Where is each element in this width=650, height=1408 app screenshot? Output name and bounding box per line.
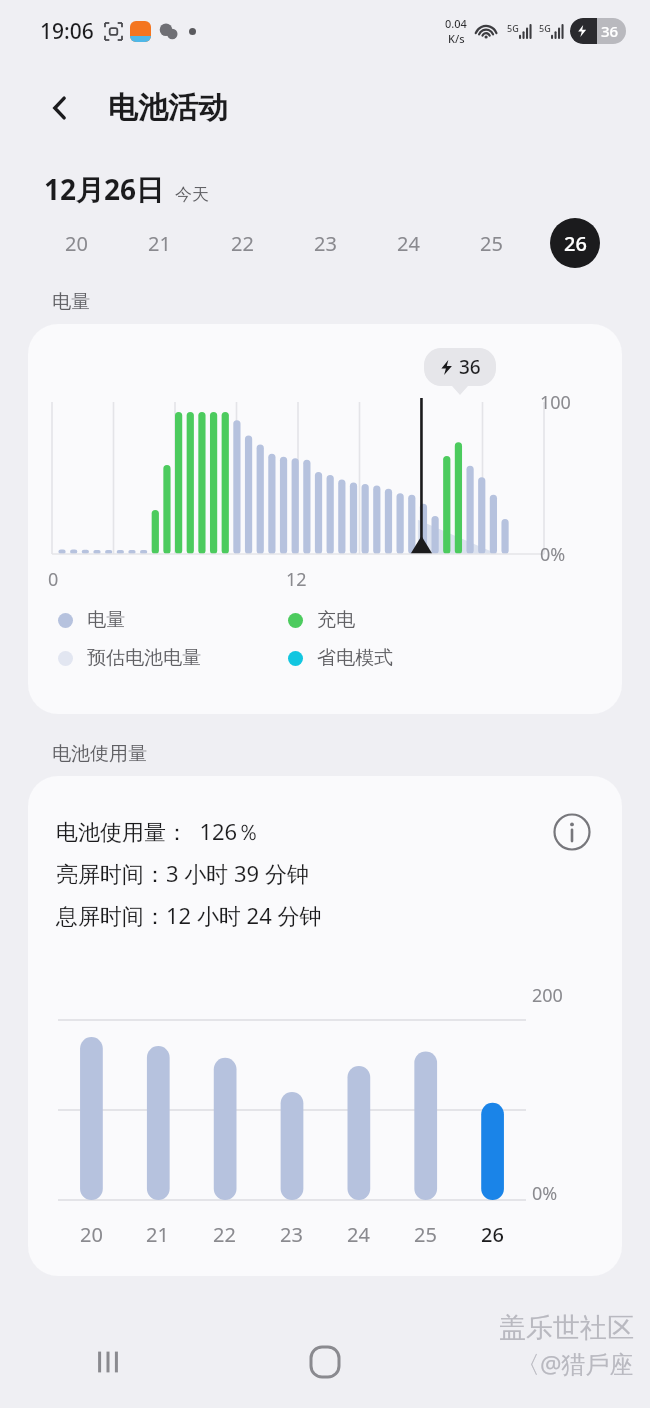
button[interactable]: 最近任务 [0, 1316, 216, 1408]
staticText: 23 [314, 230, 337, 257]
staticText: 电池使用量 [52, 742, 147, 766]
staticText: 电量 [52, 290, 90, 314]
staticText: 22 [213, 1221, 236, 1248]
staticText: 26 [564, 230, 587, 257]
button[interactable]: 充电 [288, 608, 355, 632]
staticText: 息屏时间：12 小时 24 分钟 [56, 900, 322, 930]
button[interactable]: 23 [284, 216, 367, 270]
staticText: 今天 [175, 184, 209, 205]
staticText: 0 [48, 567, 59, 592]
button[interactable]: 电池使用量： 126％ [28, 776, 622, 1276]
staticText: 电池使用量： 126％ [56, 816, 260, 846]
button[interactable]: 25 [450, 216, 533, 270]
staticText: 充电 [317, 608, 355, 632]
staticText: 5G [507, 22, 519, 34]
button[interactable]: 省电模式 [288, 646, 393, 670]
staticText: 36 [601, 21, 619, 41]
staticText: 电量 [87, 608, 125, 632]
staticText: 0.04 [445, 16, 467, 31]
staticText: 23 [280, 1221, 303, 1248]
staticText: 省电模式 [317, 646, 393, 670]
staticText: 21 [146, 1221, 169, 1248]
staticText: 电池活动 [108, 89, 228, 127]
staticText: K/s [448, 31, 465, 46]
staticText: 20 [80, 1221, 103, 1248]
button[interactable]: 详细信息 [544, 804, 600, 860]
button[interactable]: 21 [118, 216, 201, 270]
staticText: 24 [397, 230, 420, 257]
staticText: 0% [540, 542, 566, 567]
staticText: 36 [459, 354, 481, 380]
staticText: 22 [231, 230, 254, 257]
button[interactable]: 预估电池电量 [58, 646, 288, 670]
staticText: 25 [480, 230, 503, 257]
button[interactable]: 主屏幕 [216, 1316, 433, 1408]
staticText: 19:06 [40, 17, 94, 46]
staticText: 24 [347, 1221, 370, 1248]
staticText: 0% [532, 1181, 558, 1206]
staticText: 26 [481, 1221, 504, 1248]
staticText: 20 [65, 230, 88, 257]
staticText: 12 [286, 567, 307, 592]
staticText: 预估电池电量 [87, 646, 201, 670]
staticText: 盖乐世社区 [499, 1311, 634, 1345]
button[interactable]: 22 [201, 216, 284, 270]
button[interactable]: 返回 [36, 84, 84, 132]
staticText: 200 [532, 983, 563, 1008]
button[interactable]: 26 [533, 216, 616, 270]
button[interactable]: 电量 [58, 608, 288, 632]
staticText: 12月26日 [44, 170, 165, 208]
staticText: 〈@猎戶座 [516, 1347, 634, 1380]
button[interactable]: 20 [34, 216, 118, 270]
staticText: 亮屏时间：3 小时 39 分钟 [56, 858, 309, 888]
staticText: 21 [148, 230, 171, 257]
staticText: 25 [414, 1221, 437, 1248]
staticText: 5G [539, 22, 551, 34]
button[interactable]: 24 [367, 216, 450, 270]
button[interactable]: 100 [28, 324, 622, 714]
staticText: 100 [540, 390, 571, 415]
